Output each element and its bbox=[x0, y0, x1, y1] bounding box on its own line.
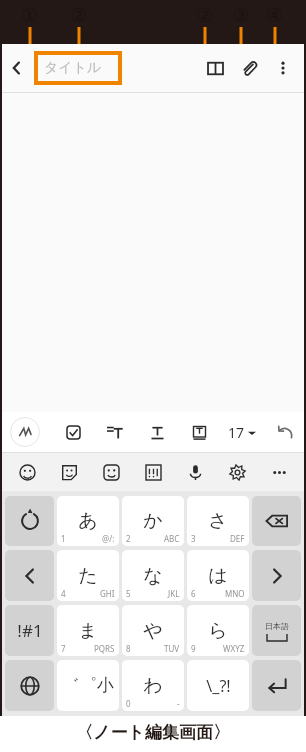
button[interactable]: space bbox=[252, 605, 301, 656]
staticText: 7 bbox=[61, 643, 66, 654]
button[interactable]: 記号 bbox=[138, 457, 168, 487]
staticText: あ bbox=[78, 509, 98, 533]
button[interactable]: な bbox=[122, 550, 184, 601]
staticText: 4 bbox=[61, 588, 66, 599]
staticText: JKL bbox=[168, 588, 180, 599]
staticText: !#1 bbox=[17, 619, 43, 642]
staticText: わ bbox=[143, 674, 163, 698]
staticText: か bbox=[143, 509, 163, 533]
staticText: - bbox=[177, 698, 180, 709]
button[interactable]: enter bbox=[252, 660, 301, 711]
staticText: タイトル bbox=[44, 59, 102, 77]
button[interactable]: ら bbox=[187, 605, 249, 656]
button[interactable]: わ bbox=[122, 660, 184, 711]
staticText: 〈ノート編集画面〉 bbox=[76, 722, 230, 743]
button[interactable]: その他 bbox=[266, 44, 300, 92]
staticText: ら bbox=[208, 619, 228, 643]
button[interactable]: 文字背景 bbox=[186, 419, 212, 445]
staticText: 6 bbox=[191, 588, 196, 599]
button[interactable]: や bbox=[122, 605, 184, 656]
button[interactable]: 手書き bbox=[10, 417, 40, 447]
staticText: 5 bbox=[126, 588, 131, 599]
staticText: ゛゜小 bbox=[62, 675, 114, 696]
button[interactable]: ま bbox=[57, 605, 119, 656]
button[interactable]: ゛゜小 bbox=[57, 660, 119, 711]
button[interactable]: 戻る bbox=[2, 44, 32, 92]
button[interactable]: た bbox=[57, 550, 119, 601]
button[interactable]: globe bbox=[5, 660, 54, 711]
button[interactable]: さ bbox=[187, 496, 249, 546]
staticText: PQRS bbox=[94, 643, 115, 654]
staticText: な bbox=[143, 564, 163, 588]
button[interactable]: チェックリスト bbox=[60, 419, 86, 445]
button[interactable]: 音声入力 bbox=[180, 457, 210, 487]
button[interactable]: 設定 bbox=[222, 457, 252, 487]
staticText: 3 bbox=[191, 533, 196, 544]
button[interactable]: 17 bbox=[226, 423, 258, 442]
staticText: 0 bbox=[126, 698, 131, 709]
button[interactable]: か bbox=[122, 496, 184, 546]
button[interactable]: left bbox=[5, 550, 54, 601]
button[interactable]: !#1 bbox=[5, 605, 54, 656]
button[interactable]: あ bbox=[57, 496, 119, 546]
staticText: WXYZ bbox=[223, 643, 245, 654]
staticText: 2 bbox=[126, 533, 131, 544]
staticText: 1 bbox=[61, 533, 66, 544]
staticText: 8 bbox=[126, 643, 131, 654]
staticText: 日本語 bbox=[265, 621, 289, 631]
staticText: MNO bbox=[225, 588, 245, 599]
button[interactable]: ステッカー bbox=[54, 457, 84, 487]
staticText: ま bbox=[78, 619, 98, 643]
staticText: た bbox=[78, 564, 98, 588]
button[interactable]: refresh bbox=[5, 496, 54, 546]
button[interactable]: right bbox=[252, 550, 301, 601]
staticText: 9 bbox=[191, 643, 196, 654]
staticText: さ bbox=[208, 509, 228, 533]
staticText: GHI bbox=[100, 588, 115, 599]
staticText: \_?! bbox=[206, 675, 231, 697]
button[interactable]: 段落 bbox=[102, 419, 128, 445]
button[interactable]: 顔文字 bbox=[96, 457, 126, 487]
button[interactable]: タイトル bbox=[36, 53, 120, 83]
button[interactable]: 絵文字 bbox=[12, 457, 42, 487]
staticText: DEF bbox=[230, 533, 245, 544]
staticText: は bbox=[208, 564, 228, 588]
button[interactable]: 添付 bbox=[232, 44, 266, 92]
button[interactable]: del bbox=[252, 496, 301, 546]
staticText: や bbox=[143, 619, 163, 643]
staticText: TUV bbox=[164, 643, 180, 654]
button[interactable]: \_?! bbox=[187, 660, 249, 711]
button[interactable]: は bbox=[187, 550, 249, 601]
button[interactable]: 文字装飾 bbox=[144, 419, 170, 445]
staticText: 17 bbox=[228, 423, 245, 442]
button[interactable]: その他 bbox=[264, 457, 294, 487]
staticText: ABC bbox=[164, 533, 180, 544]
button[interactable]: 元に戻す bbox=[272, 419, 298, 445]
staticText: @/: bbox=[102, 533, 115, 544]
button[interactable]: ブック bbox=[198, 44, 232, 92]
